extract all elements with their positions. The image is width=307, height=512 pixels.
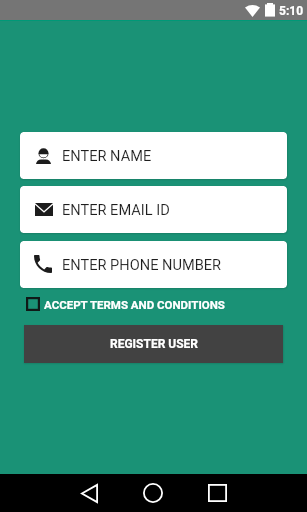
button[interactable]: Home bbox=[133, 474, 173, 512]
button[interactable]: ENTER PHONE NUMBER bbox=[20, 241, 287, 288]
staticText: 5:10 bbox=[279, 4, 304, 18]
button[interactable]: ENTER EMAIL ID bbox=[20, 186, 287, 233]
button[interactable]: Recents bbox=[197, 474, 237, 512]
button[interactable]: ENTER NAME bbox=[20, 132, 287, 179]
staticText: REGISTER USER bbox=[110, 337, 198, 351]
button[interactable]: REGISTER USER bbox=[24, 325, 283, 363]
staticText: ENTER PHONE NUMBER bbox=[62, 256, 222, 273]
button[interactable]: ACCEPT TERMS AND CONDITIONS bbox=[20, 292, 225, 316]
button[interactable]: Back bbox=[69, 474, 109, 512]
staticText: ENTER NAME bbox=[62, 147, 152, 164]
staticText: ACCEPT TERMS AND CONDITIONS bbox=[44, 298, 225, 311]
staticText: ENTER EMAIL ID bbox=[62, 201, 170, 218]
